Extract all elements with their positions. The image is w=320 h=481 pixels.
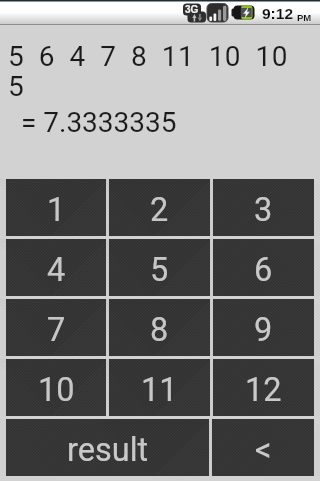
staticText: 7 <box>47 311 66 349</box>
staticText: 9 <box>254 311 273 349</box>
button[interactable]: 5 <box>109 239 210 296</box>
staticText: 12 <box>245 371 282 409</box>
staticText: result <box>67 431 149 469</box>
staticText: 9:12 <box>262 5 294 22</box>
staticText: < <box>255 431 272 469</box>
staticText: 2 <box>150 191 169 229</box>
button[interactable]: result <box>6 419 209 476</box>
button[interactable]: 6 <box>213 239 314 296</box>
staticText: 6 <box>254 251 273 289</box>
staticText: 3 <box>254 191 273 229</box>
staticText: 4 <box>47 251 66 289</box>
button[interactable]: 12 <box>213 359 314 416</box>
staticText: 3G <box>185 4 199 15</box>
button[interactable]: 3 <box>213 179 314 236</box>
button[interactable]: 8 <box>109 299 210 356</box>
button[interactable]: 9 <box>213 299 314 356</box>
staticText: 1 <box>47 191 66 229</box>
staticText: PM <box>297 12 312 23</box>
button[interactable]: 11 <box>109 359 210 416</box>
staticText: = 7.3333335 <box>14 106 177 139</box>
staticText: 5 <box>150 251 169 289</box>
staticText: 8 <box>150 311 169 349</box>
staticText: 10 <box>38 371 75 409</box>
button[interactable]: 1 <box>6 179 106 236</box>
button[interactable]: 10 <box>6 359 106 416</box>
staticText: 11 <box>141 371 178 409</box>
button[interactable]: 2 <box>109 179 210 236</box>
button[interactable]: 7 <box>6 299 106 356</box>
button[interactable]: < <box>212 419 314 476</box>
button[interactable]: 4 <box>6 239 106 296</box>
staticText: 5 6 4 7 8 11 10 10 5 <box>8 40 288 103</box>
